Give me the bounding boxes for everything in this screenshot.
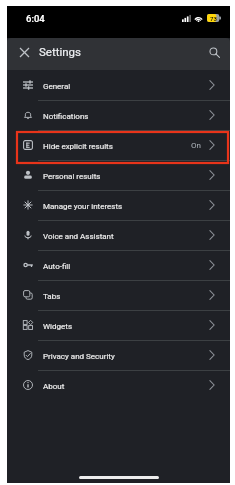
staticText: 6:04: [26, 13, 45, 24]
button[interactable]: General: [7, 70, 230, 100]
button[interactable]: Close: [11, 39, 37, 65]
button[interactable]: Personal results: [7, 160, 230, 190]
staticText: Auto-fill: [43, 262, 71, 271]
button[interactable]: Manage your interests: [7, 190, 230, 220]
staticText: Notifications: [43, 112, 89, 121]
button[interactable]: Search: [201, 39, 227, 65]
button[interactable]: Privacy and Security: [7, 340, 230, 370]
staticText: On: [191, 141, 201, 150]
staticText: Manage your interests: [43, 202, 123, 211]
staticText: 73: [210, 15, 217, 22]
staticText: General: [43, 82, 71, 91]
button[interactable]: Auto-fill: [7, 250, 230, 280]
button[interactable]: Tabs: [7, 280, 230, 310]
staticText: Hide explicit results: [43, 142, 113, 151]
staticText: Voice and Assistant: [43, 232, 114, 241]
staticText: Settings: [39, 45, 81, 58]
staticText: Widgets: [43, 322, 73, 331]
button[interactable]: About: [7, 370, 230, 400]
button[interactable]: Voice and Assistant: [7, 220, 230, 250]
button[interactable]: Widgets: [7, 310, 230, 340]
button[interactable]: Hide explicit results: [7, 130, 230, 160]
staticText: Personal results: [43, 172, 101, 181]
staticText: Tabs: [43, 292, 61, 301]
button[interactable]: Notifications: [7, 100, 230, 130]
staticText: About: [43, 382, 65, 391]
staticText: Privacy and Security: [43, 352, 115, 361]
